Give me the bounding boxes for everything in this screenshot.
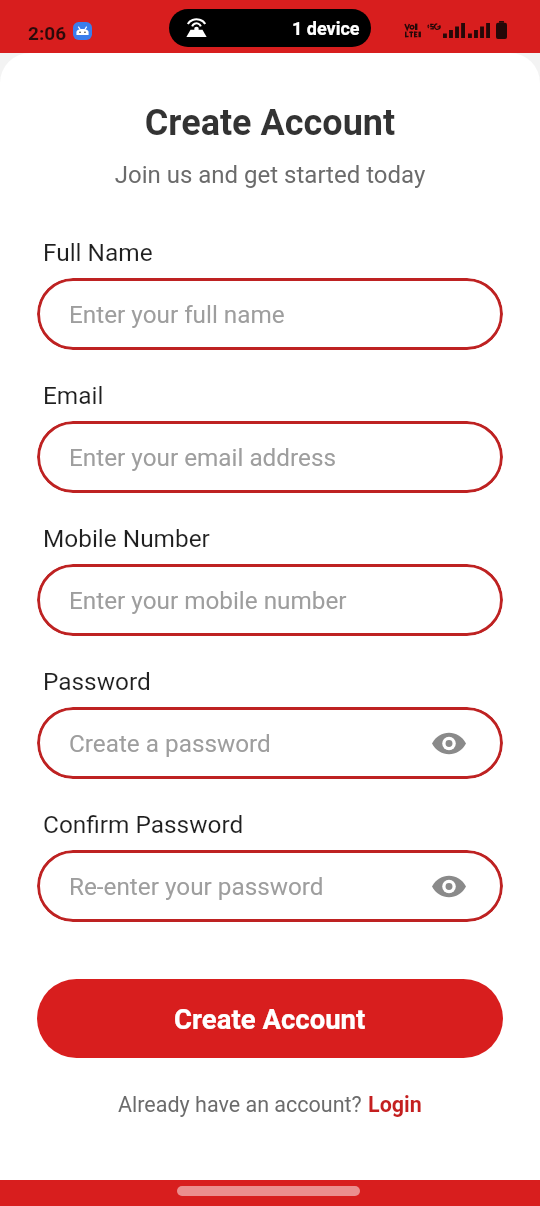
button[interactable]: Enter your mobile number [37,564,503,636]
staticText: Join us and get started today [37,161,503,189]
staticText: Create Account [174,1003,366,1035]
staticText: Password [43,667,151,696]
staticText: Enter your full name [69,300,285,328]
staticText: Confirm Password [43,810,244,839]
staticText: Create a password [69,729,271,757]
button[interactable]: Re-enter your password [37,850,503,922]
staticText: Enter your mobile number [69,586,347,614]
staticText: Mobile Number [43,524,210,553]
staticText: Full Name [43,238,153,267]
staticText: Re-enter your password [69,872,324,900]
staticText: Enter your email address [69,443,336,471]
staticText: Already have an account? [118,1092,368,1117]
button[interactable]: Create a password [37,707,503,779]
button[interactable]: Enter your full name [37,278,503,350]
button[interactable]: Cast to 1 device [169,9,371,47]
staticText: 1 device [292,18,360,39]
button[interactable]: Show password [427,721,471,765]
button[interactable]: Login [368,1092,422,1117]
button[interactable]: Create Account [37,979,503,1058]
staticText: Email [43,381,104,410]
staticText: 2:06 [28,22,67,44]
staticText: Login [368,1092,422,1117]
staticText: Create Account [37,102,503,144]
button[interactable]: Enter your email address [37,421,503,493]
button[interactable]: Show confirmation password [427,864,471,908]
